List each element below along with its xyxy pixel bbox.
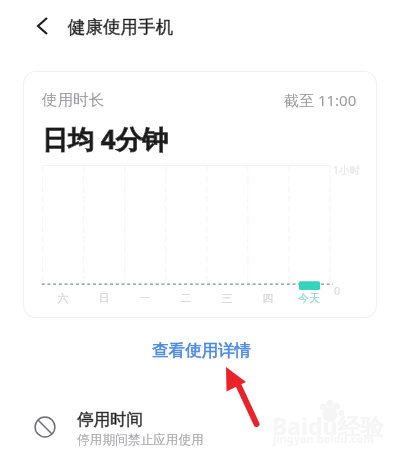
staticText: 日均 4分钟 bbox=[42, 121, 168, 157]
staticText: 0 bbox=[334, 283, 341, 298]
staticText: 1小时 bbox=[333, 163, 361, 177]
staticText: 查看使用详情 bbox=[152, 340, 251, 361]
staticText: 六 bbox=[45, 291, 81, 305]
staticText: 二 bbox=[168, 291, 204, 305]
staticText: Baidu经验 bbox=[272, 410, 384, 441]
staticText: 停用时间 bbox=[77, 409, 143, 430]
staticText: 健康使用手机 bbox=[68, 16, 173, 38]
staticText: jingyan.baidu.com bbox=[273, 431, 375, 446]
staticText: 使用时长 bbox=[42, 90, 104, 110]
button[interactable]: Back bbox=[24, 8, 60, 44]
staticText: 四 bbox=[250, 291, 286, 305]
button[interactable]: 查看使用详情 bbox=[138, 336, 265, 365]
staticText: 日均 4分钟 bbox=[42, 121, 168, 157]
staticText: 日 bbox=[86, 291, 122, 305]
staticText: 一 bbox=[127, 291, 163, 305]
staticText: 截至 11:00 bbox=[284, 90, 357, 110]
staticText: 查看使用详情 bbox=[152, 340, 251, 361]
staticText: 三 bbox=[209, 291, 245, 305]
staticText: 今天 bbox=[291, 291, 327, 305]
staticText: 健康使用手机 bbox=[68, 16, 173, 38]
button[interactable]: 停用时间 bbox=[0, 400, 396, 456]
staticText: 停用期间禁止应用使用 bbox=[77, 432, 204, 448]
staticText: 停用时间 bbox=[77, 409, 143, 430]
